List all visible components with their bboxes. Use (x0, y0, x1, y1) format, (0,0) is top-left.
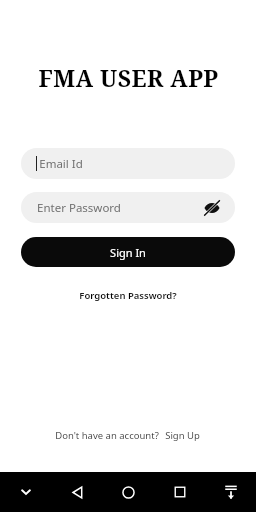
button[interactable]: Email Id (21, 148, 235, 179)
button[interactable]: Back (52, 472, 103, 512)
button[interactable]: Sign In (21, 237, 235, 267)
button[interactable]: Home (103, 472, 154, 512)
staticText: Don't have an account? (55, 429, 159, 442)
staticText: FMA USER APP (38, 62, 219, 93)
button[interactable]: Hide keyboard (0, 472, 52, 512)
staticText: Sign In (110, 245, 146, 260)
button[interactable]: Recent apps (154, 472, 205, 512)
button[interactable]: Enter Password (21, 192, 235, 223)
staticText: Forgotten Password? (79, 289, 177, 302)
button[interactable]: Show password (201, 197, 223, 219)
staticText: Enter Password (37, 200, 121, 216)
button[interactable]: Sign Up (163, 427, 202, 444)
button[interactable]: Dismiss keyboard (205, 472, 256, 512)
staticText: Email Id (39, 156, 83, 172)
button[interactable]: Forgotten Password? (73, 286, 183, 305)
staticText: Sign Up (165, 429, 200, 442)
